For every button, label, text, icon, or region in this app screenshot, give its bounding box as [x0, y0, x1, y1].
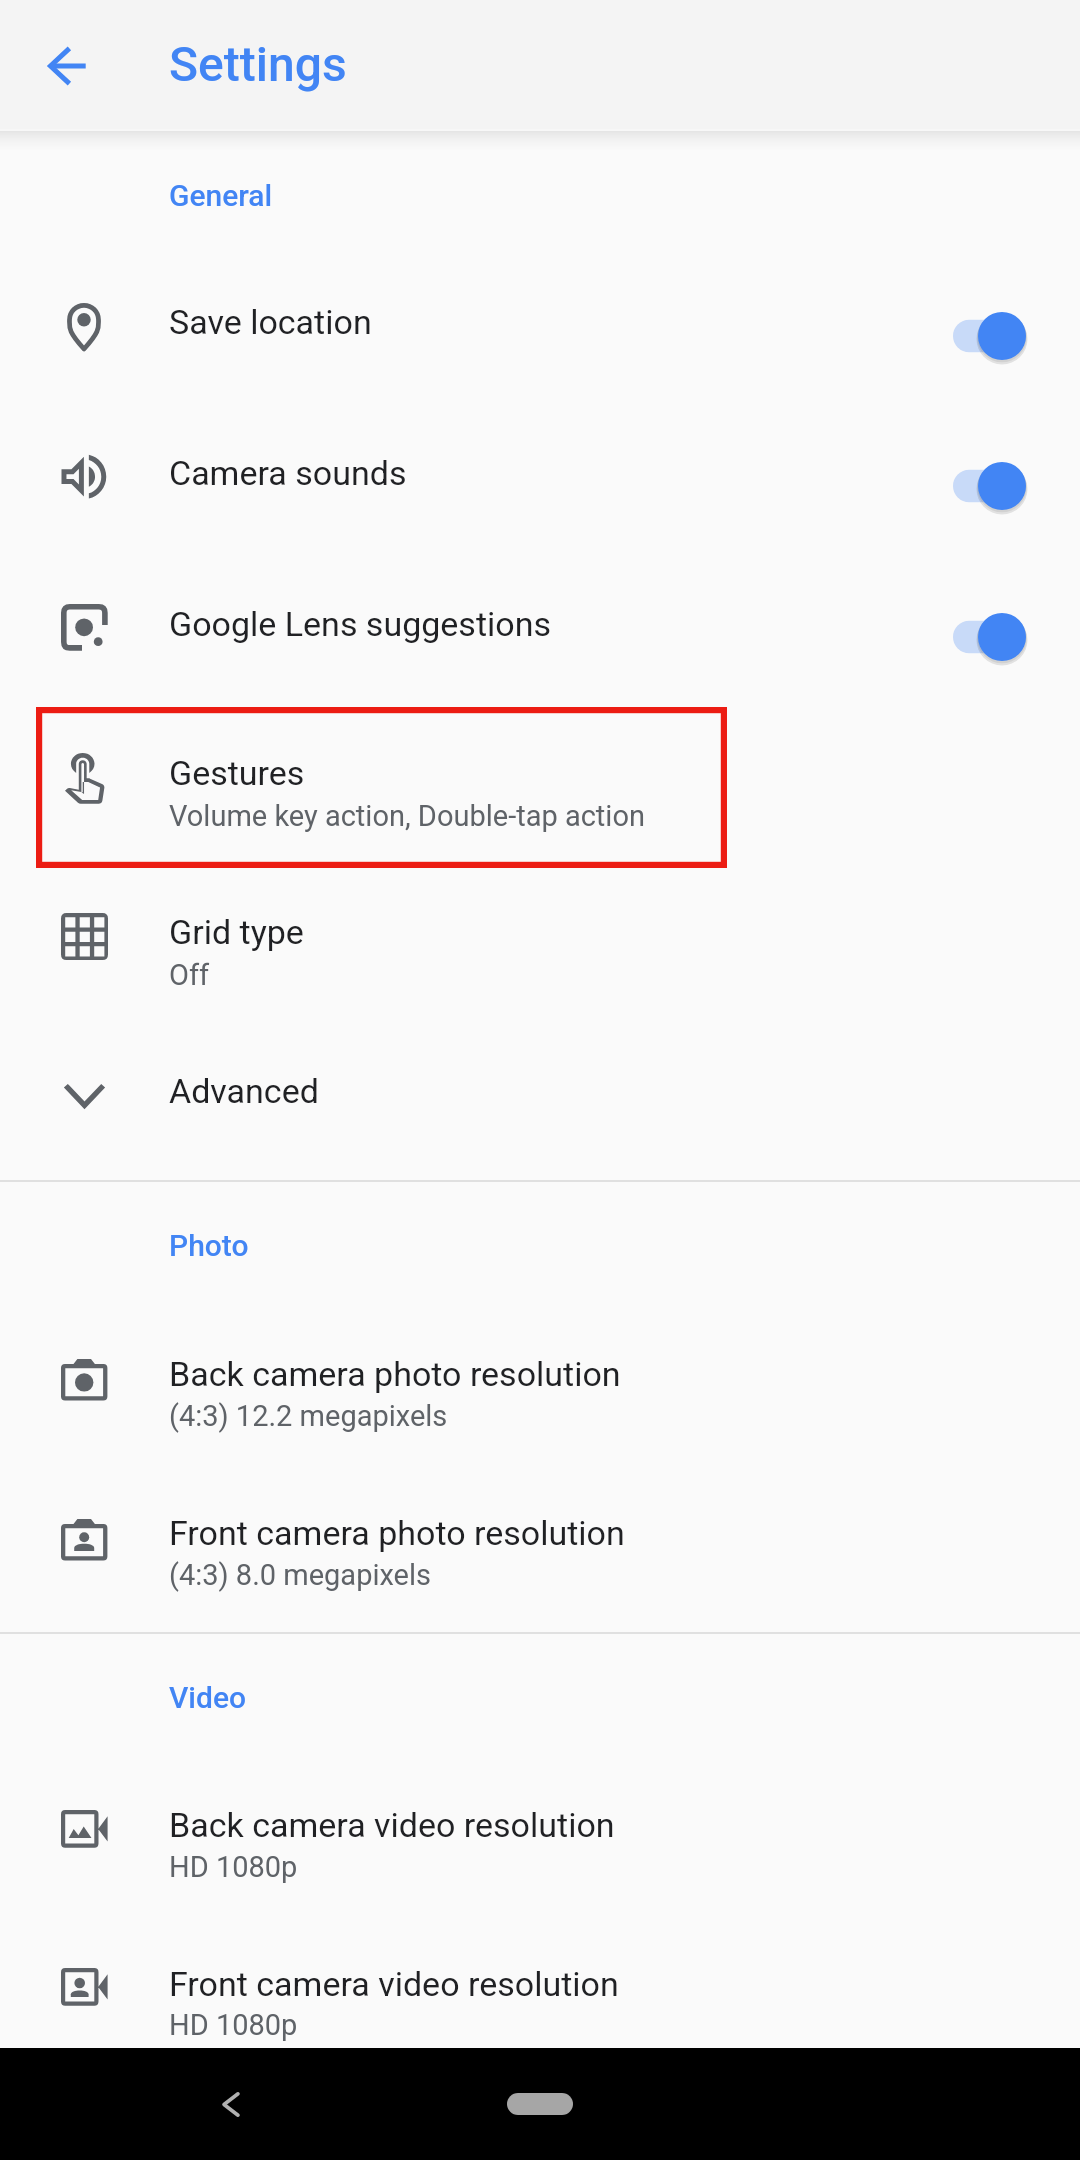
button[interactable]: Home — [507, 2093, 573, 2115]
staticText: Off — [169, 958, 210, 992]
staticText: Front camera photo resolution — [169, 1513, 625, 1553]
staticText: Front camera video resolution — [169, 1964, 619, 2004]
button[interactable]: Front camera photo resolution — [0, 1463, 1080, 1623]
button[interactable]: Back camera video resolution — [0, 1755, 1080, 1915]
button[interactable]: Back camera photo resolution — [0, 1303, 1080, 1463]
staticText: Camera sounds — [169, 453, 407, 493]
staticText: Video — [169, 1680, 247, 1715]
button[interactable]: Navigate up — [29, 28, 105, 104]
staticText: Back camera video resolution — [169, 1805, 615, 1845]
staticText: Photo — [169, 1228, 249, 1263]
button[interactable]: Camera sounds, on — [941, 454, 1041, 518]
button[interactable]: Grid type — [0, 868, 1080, 1026]
staticText: Back camera photo resolution — [169, 1354, 621, 1394]
staticText: Save location — [169, 302, 372, 342]
staticText: Gestures — [169, 753, 305, 793]
button[interactable]: Google Lens suggestions, on — [941, 605, 1041, 669]
staticText: Settings — [169, 36, 347, 92]
staticText: (4:3) 12.2 megapixels — [169, 1399, 448, 1433]
button[interactable]: Camera sounds — [0, 409, 1080, 560]
button[interactable]: Back — [201, 2074, 261, 2134]
staticText: Volume key action, Double-tap action — [169, 799, 645, 833]
button[interactable]: Front camera video resolution — [0, 1915, 1080, 2048]
button[interactable]: Google Lens suggestions — [0, 560, 1080, 707]
staticText: General — [169, 178, 273, 213]
staticText: (4:3) 8.0 megapixels — [169, 1558, 431, 1592]
staticText: Google Lens suggestions — [169, 604, 552, 644]
staticText: HD 1080p — [169, 2008, 298, 2042]
staticText: Grid type — [169, 912, 304, 952]
button[interactable]: Advanced — [0, 1026, 1080, 1179]
button[interactable]: Gestures — [0, 707, 1080, 868]
button[interactable]: Save location, on — [941, 304, 1041, 368]
button[interactable]: Save location — [0, 258, 1080, 409]
staticText: Advanced — [169, 1071, 319, 1111]
staticText: HD 1080p — [169, 1850, 298, 1884]
